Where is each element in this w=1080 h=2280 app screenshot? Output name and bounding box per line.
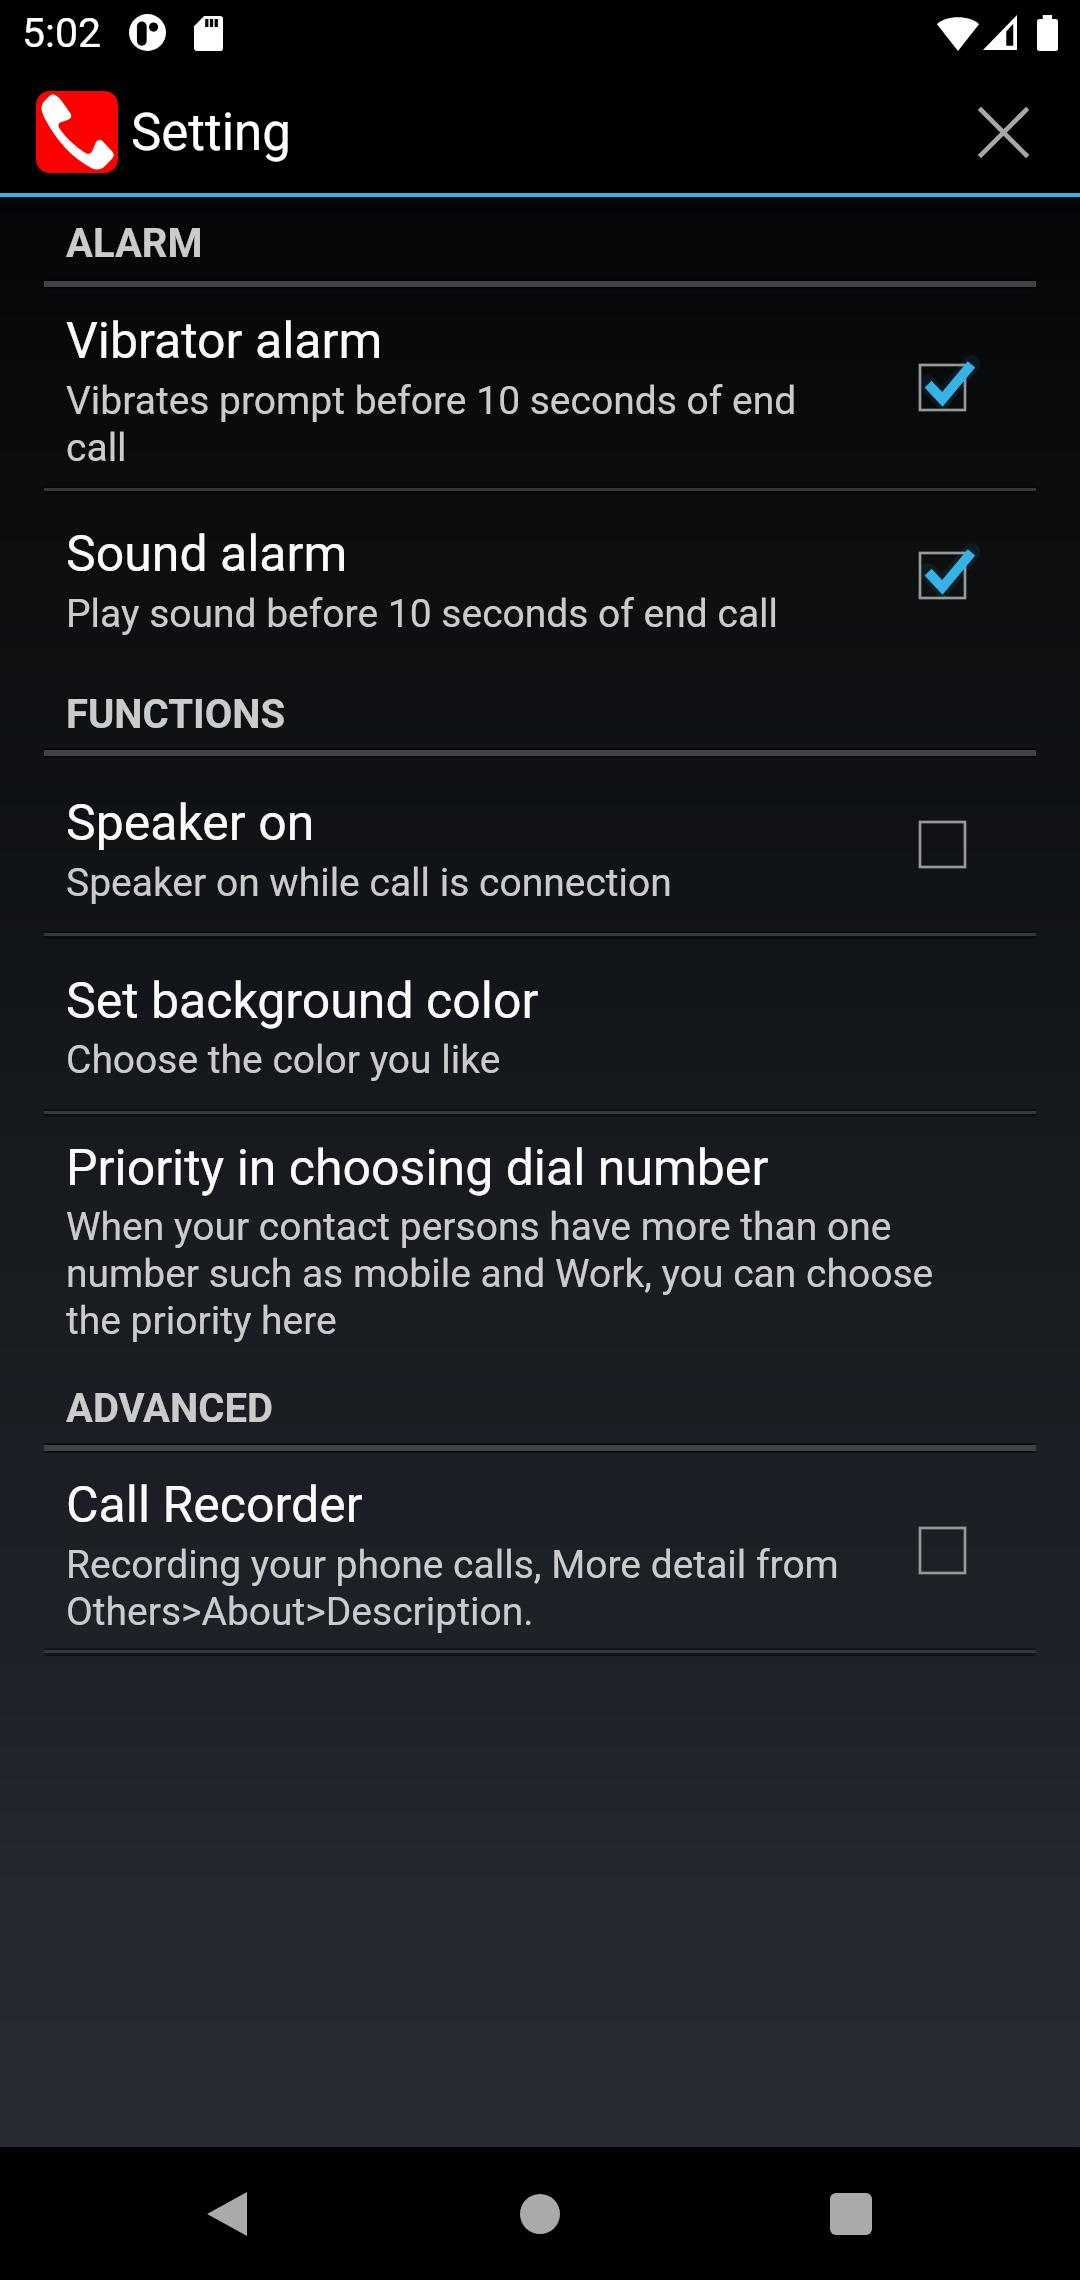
- staticText: Play sound before 10 seconds of end call: [66, 591, 866, 637]
- button[interactable]: Home: [473, 2147, 606, 2280]
- staticText: Vibrator alarm: [66, 312, 866, 371]
- staticText: When your contact persons have more than…: [66, 1204, 956, 1344]
- staticText: Setting: [131, 103, 291, 163]
- staticText: ALARM: [66, 220, 203, 267]
- staticText: Speaker on while call is connection: [66, 860, 866, 906]
- button[interactable]: Close: [955, 84, 1051, 180]
- button[interactable]: Priority in choosing dial number: [0, 1114, 1080, 1380]
- staticText: Vibrates prompt before 10 seconds of end…: [66, 378, 866, 471]
- staticText: Priority in choosing dial number: [66, 1139, 956, 1198]
- button[interactable]: Set background color: [0, 936, 1080, 1111]
- staticText: Sound alarm: [66, 525, 866, 584]
- staticText: FUNCTIONS: [66, 691, 286, 738]
- button[interactable]: Recents: [784, 2147, 917, 2280]
- button[interactable]: Vibrator alarm: [0, 287, 1080, 488]
- staticText: ADVANCED: [66, 1385, 273, 1432]
- staticText: Choose the color you like: [66, 1037, 1016, 1083]
- staticText: 5:02: [22, 9, 102, 57]
- button[interactable]: Call Recorder: [0, 1450, 1080, 1650]
- button[interactable]: Speaker on: [0, 756, 1080, 933]
- button[interactable]: Sound alarm: [0, 490, 1080, 660]
- staticText: Call Recorder: [66, 1476, 866, 1535]
- staticText: Recording your phone calls, More detail …: [66, 1542, 866, 1635]
- staticText: Set background color: [66, 972, 1016, 1031]
- staticText: Speaker on: [66, 794, 866, 853]
- button[interactable]: Back: [160, 2147, 293, 2280]
